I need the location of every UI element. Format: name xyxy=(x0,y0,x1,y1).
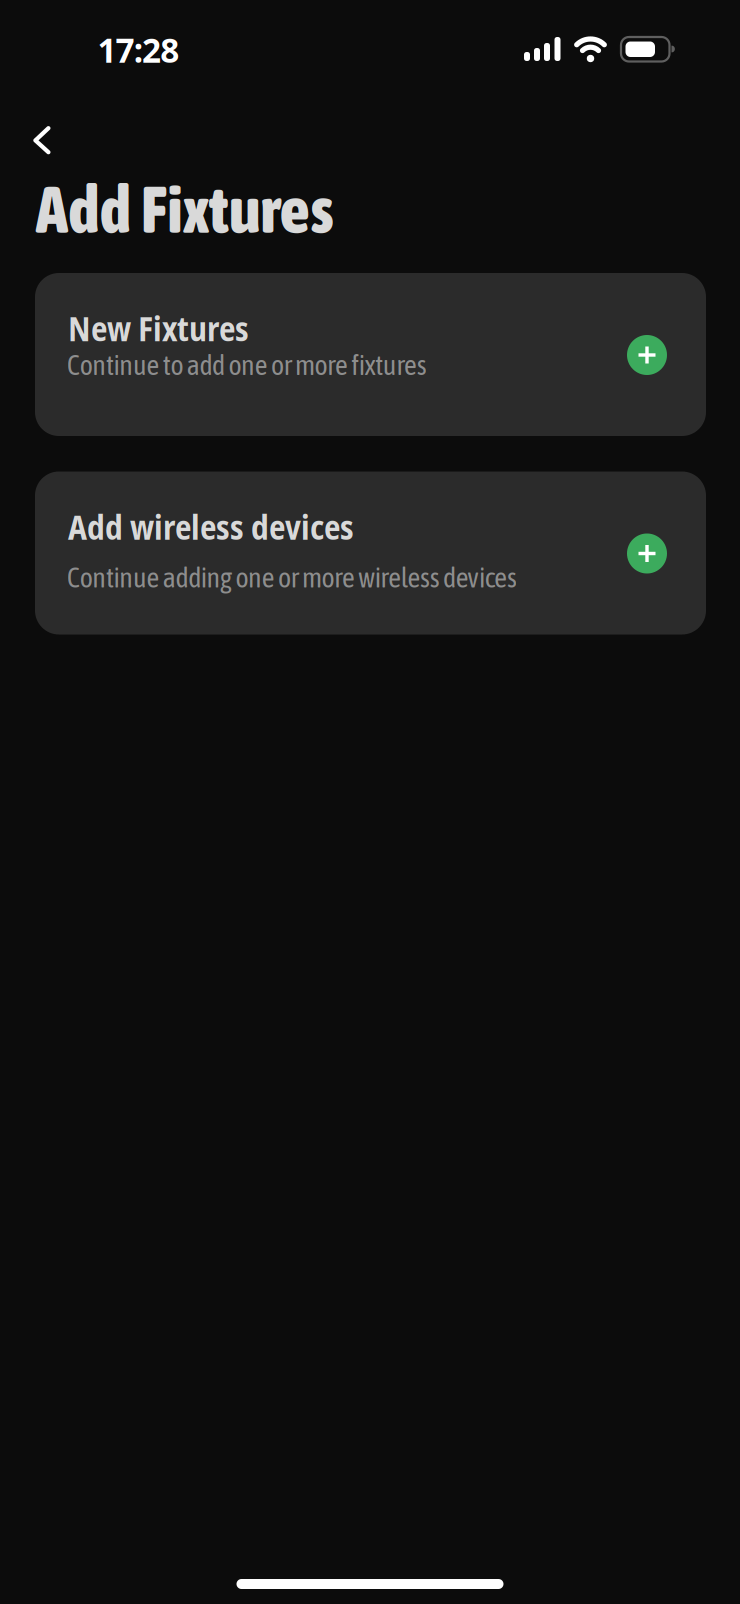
staticText: Continue adding one or more wireless dev… xyxy=(67,561,517,593)
button[interactable]: Add wireless devices xyxy=(35,471,706,634)
staticText: Add Fixtures xyxy=(36,172,333,246)
staticText: New Fixtures xyxy=(68,306,249,351)
button[interactable]: Back xyxy=(8,112,64,168)
staticText: Continue to add one or more fixtures xyxy=(67,349,427,381)
button[interactable]: New Fixtures xyxy=(35,273,706,436)
staticText: 17:28 xyxy=(97,28,179,72)
staticText: Add wireless devices xyxy=(68,504,354,549)
